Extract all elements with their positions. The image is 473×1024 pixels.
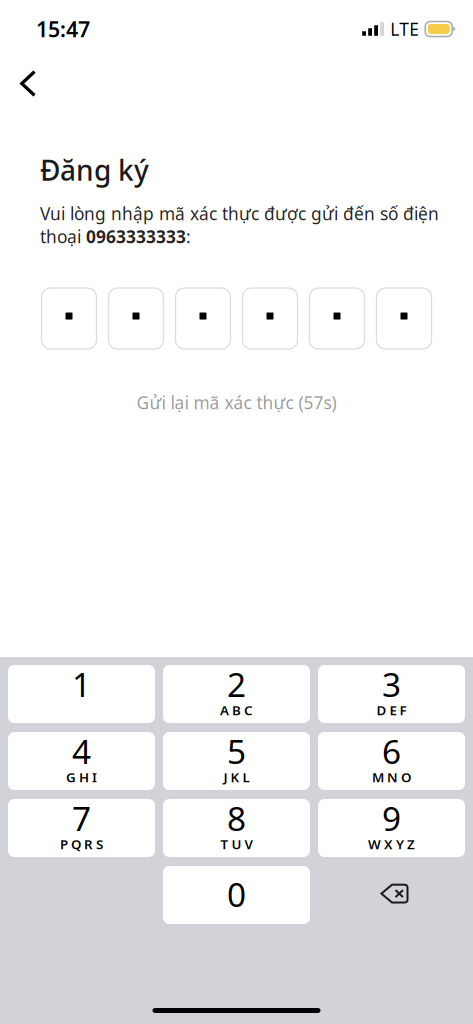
staticText: 8 xyxy=(227,796,246,840)
staticText: 15:47 xyxy=(36,15,90,43)
button[interactable]: Back xyxy=(0,54,56,103)
button[interactable]: OTP digit xyxy=(309,288,364,349)
staticText: 5 xyxy=(227,729,246,773)
staticText: P Q R S xyxy=(60,835,103,853)
staticText: 7 xyxy=(72,796,91,840)
button[interactable]: OTP digit xyxy=(376,288,431,349)
button[interactable]: 1 xyxy=(8,665,155,723)
staticText: 4 xyxy=(72,729,91,773)
staticText: LTE xyxy=(390,17,419,40)
staticText: Gửi lại mã xác thực (57s) xyxy=(136,391,336,414)
button[interactable]: 5 xyxy=(163,732,310,790)
staticText: 9 xyxy=(382,796,401,840)
button[interactable]: OTP digit xyxy=(175,288,230,349)
staticText: Đăng ký xyxy=(40,151,149,189)
staticText: D E F xyxy=(376,701,406,719)
button[interactable]: 2 xyxy=(163,665,310,723)
button[interactable]: OTP digit xyxy=(41,288,96,349)
staticText: 3 xyxy=(382,662,401,706)
staticText: M N O xyxy=(372,768,411,786)
staticText: W X Y Z xyxy=(368,835,415,853)
button[interactable]: OTP digit xyxy=(242,288,297,349)
button[interactable]: OTP digit xyxy=(108,288,163,349)
button[interactable]: 0 xyxy=(163,866,310,924)
staticText: J K L xyxy=(223,768,249,786)
button[interactable]: Gửi lại mã xác thực (57s) xyxy=(116,379,356,426)
staticText: Vui lòng nhập mã xác thực được gửi đến s… xyxy=(40,202,439,248)
button[interactable]: Delete xyxy=(318,866,465,924)
staticText: 2 xyxy=(227,662,246,706)
button[interactable]: 3 xyxy=(318,665,465,723)
staticText: 1 xyxy=(72,662,91,706)
button[interactable]: 8 xyxy=(163,799,310,857)
button[interactable]: 4 xyxy=(8,732,155,790)
button[interactable]: 7 xyxy=(8,799,155,857)
staticText: G H I xyxy=(66,768,97,786)
staticText: 0 xyxy=(227,872,246,916)
button[interactable]: 9 xyxy=(318,799,465,857)
button[interactable]: 6 xyxy=(318,732,465,790)
staticText: 6 xyxy=(382,729,401,773)
staticText: A B C xyxy=(220,701,253,719)
staticText: T U V xyxy=(220,835,252,853)
